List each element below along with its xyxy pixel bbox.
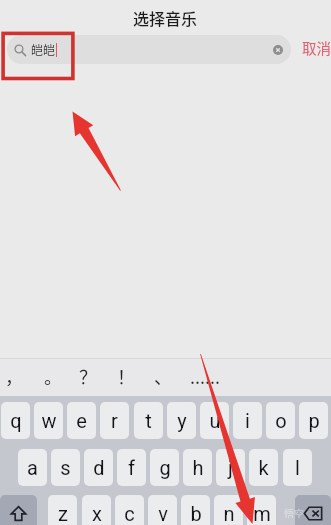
button[interactable]: h <box>183 449 212 486</box>
button[interactable]: b <box>181 495 210 525</box>
staticText: u <box>209 409 221 432</box>
staticText: z <box>58 502 68 525</box>
button[interactable]: k <box>249 449 278 486</box>
button[interactable]: 、 <box>146 357 180 394</box>
staticText: p <box>308 409 320 432</box>
button[interactable]: s <box>51 449 80 486</box>
button[interactable]: c <box>115 495 144 525</box>
staticText: k <box>258 456 269 479</box>
button[interactable]: ...... <box>179 357 231 394</box>
button[interactable]: e <box>67 402 96 439</box>
button[interactable]: r <box>100 402 129 439</box>
staticText: n <box>223 502 235 525</box>
staticText: ！ <box>117 363 135 389</box>
staticText: i <box>245 409 250 432</box>
button[interactable]: a <box>18 449 47 486</box>
staticText: 皑皑 <box>31 41 56 58</box>
button[interactable]: ， <box>0 357 31 394</box>
staticText: r <box>111 409 118 432</box>
staticText: ...... <box>190 363 221 389</box>
staticText: ， <box>5 363 23 389</box>
staticText: t <box>145 409 152 432</box>
staticText: l <box>295 456 300 479</box>
staticText: g <box>159 456 171 479</box>
button[interactable]: Backspace <box>295 495 331 525</box>
staticText: q <box>10 409 22 432</box>
button[interactable]: p <box>299 402 328 439</box>
staticText: v <box>158 502 168 525</box>
staticText: 。 <box>44 363 62 389</box>
button[interactable]: j <box>216 449 245 486</box>
staticText: e <box>76 409 87 432</box>
button[interactable]: n <box>214 495 243 525</box>
button[interactable]: f <box>117 449 146 486</box>
staticText: y <box>177 409 187 432</box>
button[interactable]: i <box>233 402 262 439</box>
button[interactable]: 皑皑 <box>7 35 291 64</box>
staticText: b <box>190 502 202 525</box>
button[interactable]: z <box>48 495 77 525</box>
staticText: s <box>60 456 71 479</box>
staticText: m <box>253 502 271 525</box>
button[interactable]: v <box>148 495 177 525</box>
staticText: h <box>192 456 204 479</box>
staticText: 选择音乐 <box>133 6 198 29</box>
button[interactable]: Clear text <box>273 45 283 55</box>
button[interactable]: u <box>200 402 229 439</box>
staticText: o <box>275 409 287 432</box>
staticText: x <box>92 502 102 525</box>
staticText: 、 <box>154 363 172 389</box>
staticText: j <box>228 456 233 479</box>
staticText: w <box>41 409 57 432</box>
button[interactable]: 取消 <box>298 33 331 62</box>
button[interactable]: 。 <box>36 357 70 394</box>
staticText: 取消 <box>302 37 331 58</box>
button[interactable]: l <box>283 449 312 486</box>
button[interactable]: y <box>167 402 196 439</box>
button[interactable]: ！ <box>109 357 143 394</box>
staticText: 悟空 <box>284 506 304 518</box>
button[interactable]: ？ <box>71 357 105 394</box>
staticText: d <box>93 456 105 479</box>
button[interactable]: o <box>266 402 295 439</box>
button[interactable]: w <box>34 402 63 439</box>
staticText: c <box>124 502 135 525</box>
button[interactable]: t <box>134 402 163 439</box>
staticText: ？ <box>79 363 97 389</box>
staticText: a <box>27 456 38 479</box>
button[interactable]: d <box>84 449 113 486</box>
button[interactable]: q <box>1 402 30 439</box>
button[interactable]: g <box>150 449 179 486</box>
button[interactable]: Shift <box>0 495 37 525</box>
staticText: f <box>128 456 135 479</box>
button[interactable]: m <box>247 495 276 525</box>
button[interactable]: x <box>82 495 111 525</box>
